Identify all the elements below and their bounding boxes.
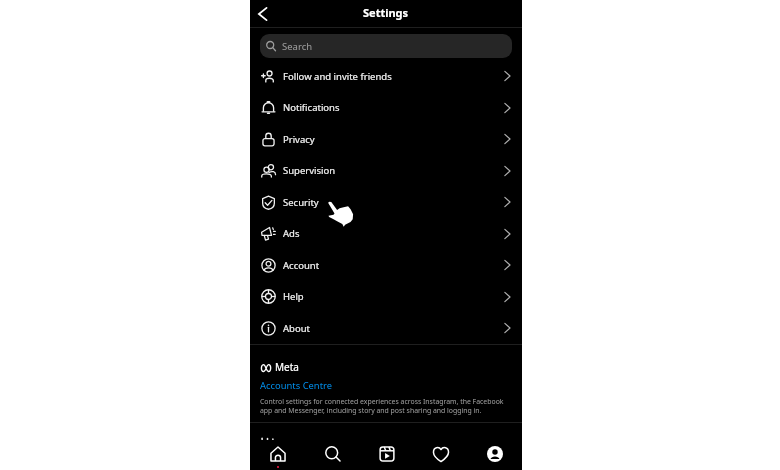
- button[interactable]: Reels: [360, 440, 414, 470]
- button[interactable]: Home: [250, 440, 305, 470]
- button[interactable]: Back: [251, 3, 273, 25]
- staticText: About: [283, 322, 310, 335]
- staticText: Meta: [275, 360, 299, 374]
- button[interactable]: Security: [250, 186, 522, 218]
- button[interactable]: Privacy: [250, 123, 522, 155]
- button[interactable]: Likes: [414, 440, 468, 470]
- button[interactable]: Notifications: [250, 92, 522, 123]
- button[interactable]: Follow and invite friends: [250, 60, 522, 92]
- staticText: Search: [282, 40, 313, 53]
- button[interactable]: Help: [250, 281, 522, 312]
- staticText: Privacy: [283, 133, 315, 146]
- button[interactable]: Accounts Centre: [260, 379, 333, 392]
- button[interactable]: Account: [250, 249, 522, 281]
- staticText: Ads: [283, 227, 300, 240]
- staticText: Security: [283, 196, 319, 209]
- staticText: Settings: [363, 5, 409, 20]
- staticText: Notifications: [283, 101, 340, 114]
- button[interactable]: Profile: [468, 440, 522, 470]
- staticText: Account: [283, 259, 320, 272]
- button[interactable]: Ads: [250, 218, 522, 249]
- button[interactable]: Search: [260, 34, 512, 58]
- staticText: Control settings for connected experienc…: [260, 397, 512, 415]
- button[interactable]: About: [250, 312, 522, 344]
- button[interactable]: Supervision: [250, 155, 522, 186]
- button[interactable]: Your activity: [250, 423, 522, 440]
- staticText: Supervision: [283, 164, 336, 177]
- staticText: Help: [283, 290, 304, 303]
- staticText: Follow and invite friends: [283, 70, 392, 83]
- button[interactable]: Search: [305, 440, 360, 470]
